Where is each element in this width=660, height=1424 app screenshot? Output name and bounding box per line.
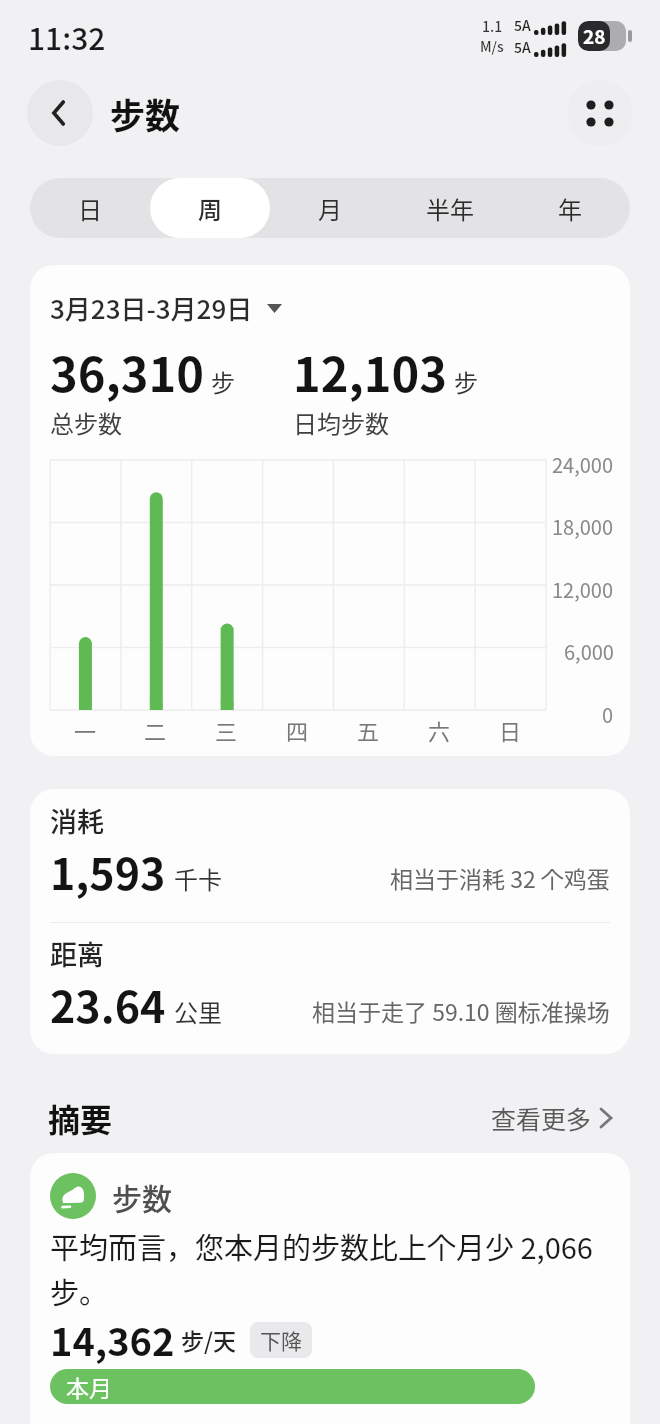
button[interactable]: 步数 (30, 1153, 630, 1424)
staticText: 三 (215, 714, 238, 746)
staticText: 18,000 (552, 512, 614, 541)
button[interactable] (27, 80, 93, 146)
staticText: 二 (144, 714, 167, 746)
staticText: 5A (514, 15, 531, 35)
staticText: 公里 (174, 994, 222, 1029)
staticText: 相当于消耗 32 个鸡蛋 (390, 861, 610, 894)
staticText: 距离 (50, 934, 104, 973)
staticText: 36,310 (50, 337, 204, 405)
staticText: 28 (583, 22, 606, 50)
staticText: 本月 (66, 1370, 112, 1403)
staticText: 平均而言，您本月的步数比上个月少 2,066 步。 (50, 1225, 610, 1312)
staticText: 3月23日-3月29日 (50, 289, 253, 327)
button[interactable]: 3月23日-3月29日 (50, 289, 282, 327)
staticText: 一 (74, 714, 97, 746)
staticText: 日 (499, 714, 522, 746)
staticText: 四 (286, 714, 309, 746)
staticText: M/s (480, 36, 504, 56)
staticText: 1.1 (482, 16, 503, 36)
staticText: 半年 (426, 191, 474, 226)
staticText: 月 (318, 191, 342, 226)
button[interactable] (567, 80, 633, 146)
staticText: 下降 (260, 1325, 302, 1355)
button[interactable]: 查看更多 (491, 1100, 612, 1136)
staticText: 12,000 (552, 575, 614, 604)
staticText: 23.64 (50, 973, 166, 1035)
staticText: 1,593 (50, 840, 166, 902)
staticText: 日均步数 (293, 405, 389, 440)
staticText: 步数 (112, 1175, 172, 1218)
staticText: 14,362 (50, 1312, 175, 1367)
staticText: 0 (602, 700, 614, 729)
button[interactable]: 半年 (390, 178, 510, 238)
staticText: 总步数 (50, 405, 122, 440)
staticText: 步 (454, 364, 478, 399)
staticText: 5A (514, 37, 531, 57)
staticText: 周 (198, 191, 222, 226)
staticText: 日 (78, 191, 102, 226)
staticText: 摘要 (48, 1095, 113, 1141)
staticText: 步 (211, 364, 235, 399)
staticText: 年 (558, 191, 582, 226)
staticText: 6,000 (564, 637, 614, 666)
button[interactable]: 年 (510, 178, 630, 238)
staticText: 查看更多 (491, 1100, 592, 1136)
button[interactable]: 月 (270, 178, 390, 238)
staticText: 步数 (110, 88, 181, 139)
staticText: 千卡 (174, 861, 222, 896)
button[interactable]: 日 (30, 178, 150, 238)
staticText: 24,000 (552, 450, 614, 479)
staticText: 步/天 (181, 1323, 236, 1356)
staticText: 消耗 (50, 801, 104, 840)
staticText: 六 (428, 714, 451, 746)
staticText: 12,103 (293, 337, 447, 405)
staticText: 五 (357, 714, 380, 746)
staticText: 相当于走了 59.10 圈标准操场 (312, 994, 610, 1027)
staticText: 11:32 (28, 15, 106, 58)
button[interactable]: 周 (150, 178, 270, 238)
